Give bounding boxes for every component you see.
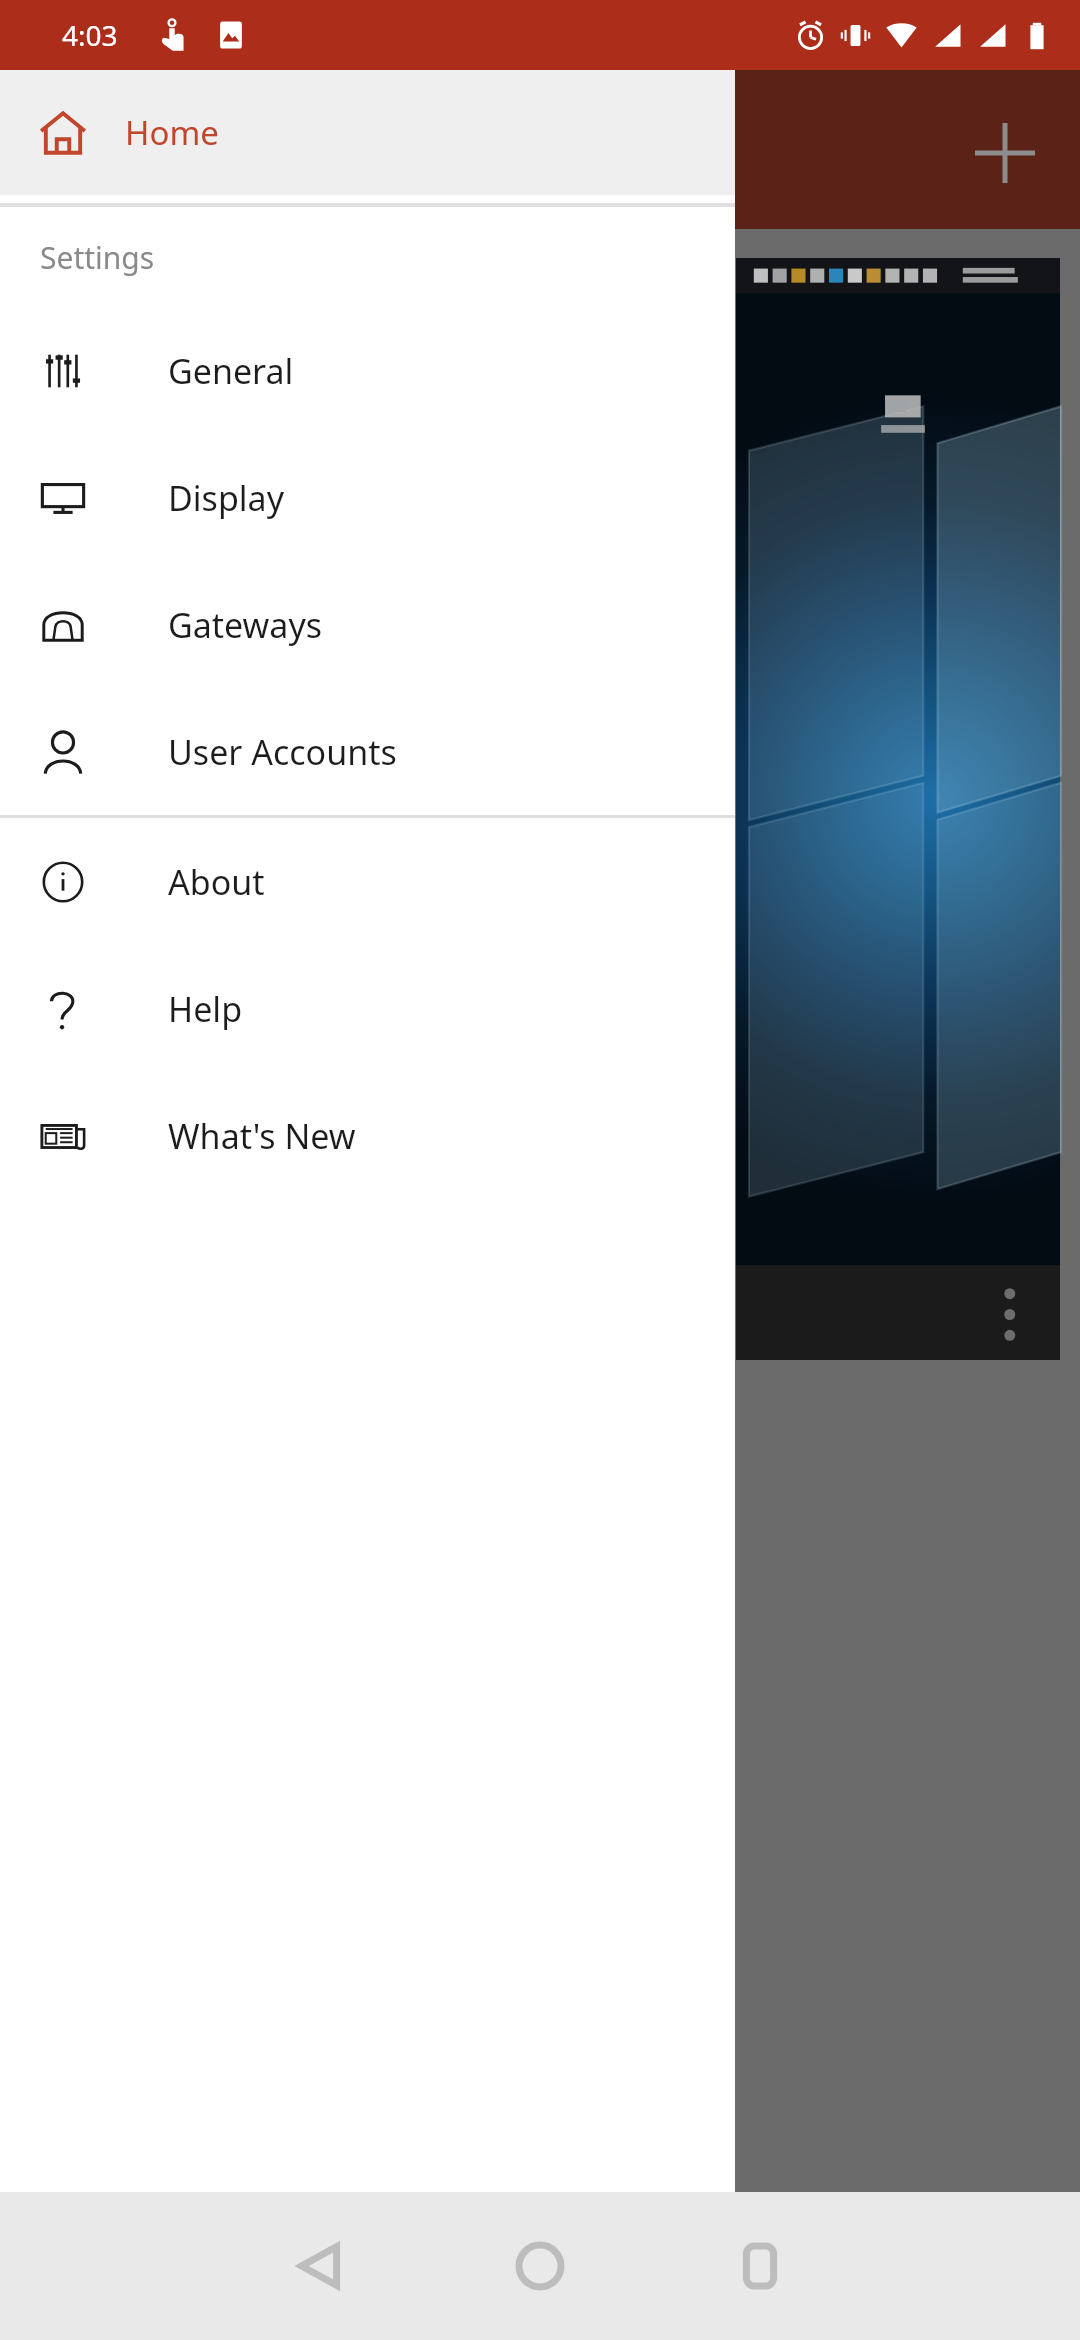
staticText: 4:03 bbox=[62, 16, 118, 54]
button[interactable]: Add bbox=[955, 103, 1055, 203]
staticText: Settings bbox=[40, 237, 155, 278]
button[interactable]: Gateways bbox=[0, 561, 735, 688]
staticText: Display bbox=[168, 475, 284, 521]
staticText: User Accounts bbox=[168, 729, 397, 775]
button[interactable]: Home bbox=[0, 70, 735, 195]
staticText: General bbox=[168, 348, 294, 394]
staticText: About bbox=[168, 859, 265, 905]
staticText: Gateways bbox=[168, 602, 323, 648]
button[interactable]: What's New bbox=[0, 1072, 735, 1199]
button[interactable]: Display bbox=[0, 434, 735, 561]
button[interactable]: User Accounts bbox=[0, 688, 735, 815]
button[interactable]: Home bbox=[465, 2192, 615, 2340]
button[interactable]: About bbox=[0, 818, 735, 945]
staticText: Help bbox=[168, 986, 243, 1032]
button[interactable]: Recents bbox=[685, 2192, 835, 2340]
staticText: Home bbox=[125, 110, 219, 155]
button[interactable]: Back bbox=[245, 2192, 395, 2340]
button[interactable]: General bbox=[0, 307, 735, 434]
staticText: What's New bbox=[168, 1113, 356, 1159]
button[interactable]: Help bbox=[0, 945, 735, 1072]
